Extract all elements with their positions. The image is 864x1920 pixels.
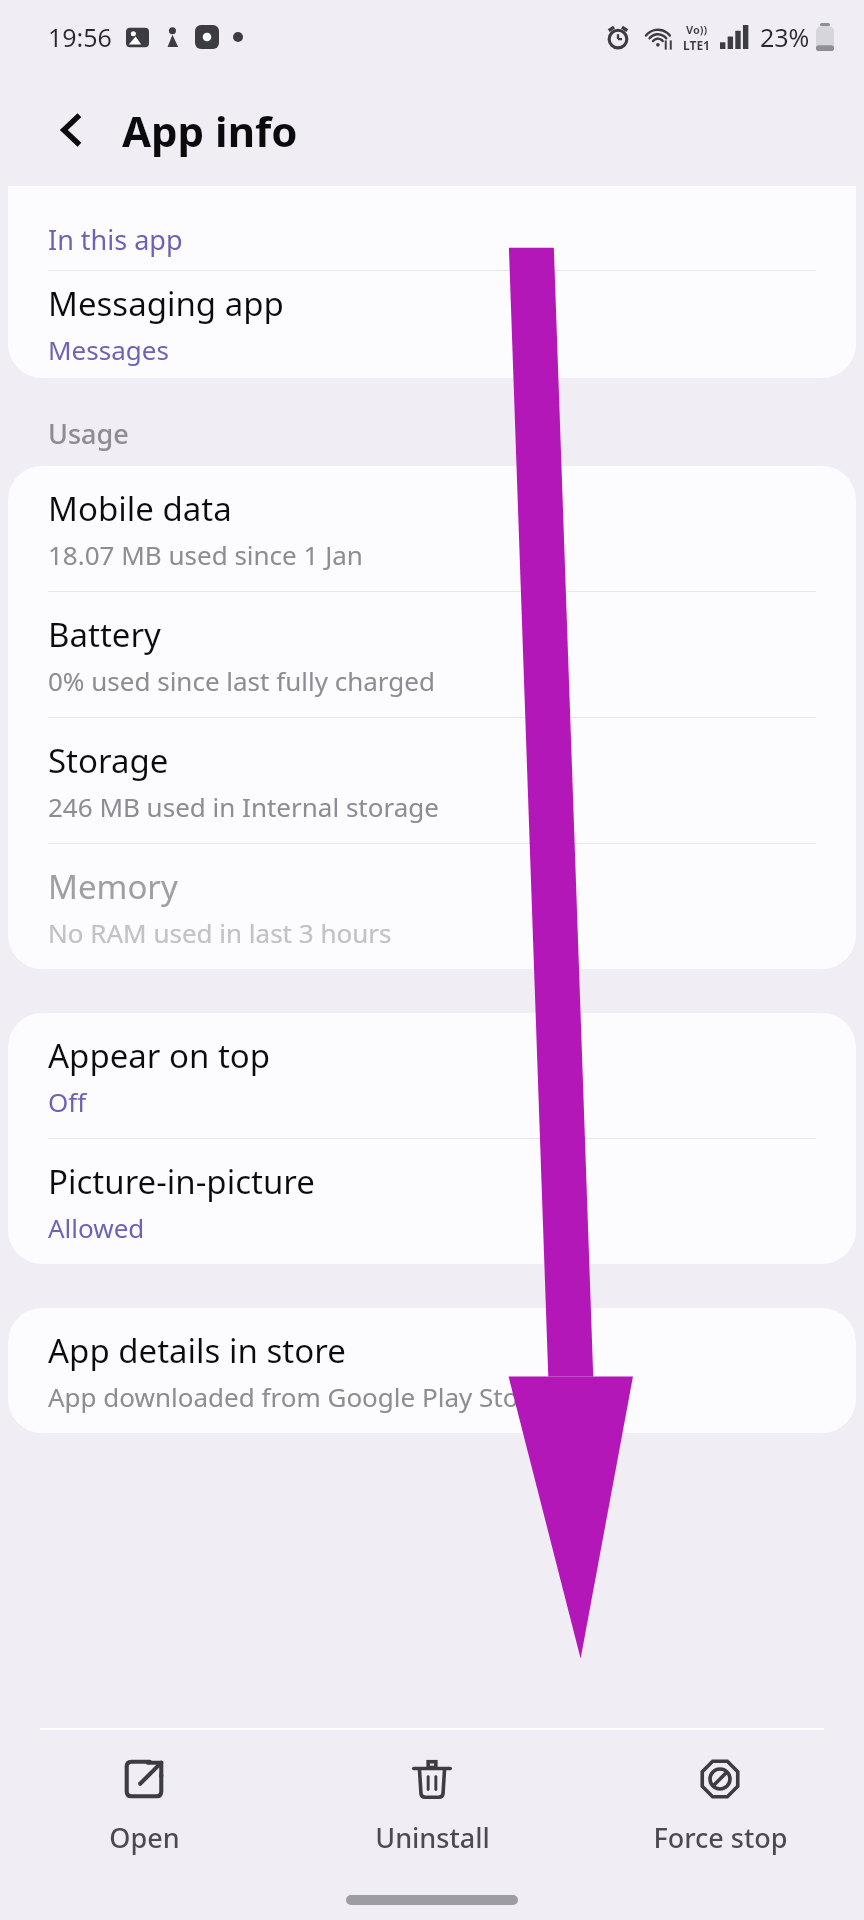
staticText: Messages xyxy=(48,332,169,367)
staticText: Battery xyxy=(48,612,161,657)
staticText: 18.07 MB used since 1 Jan xyxy=(48,537,363,572)
staticText: Allowed xyxy=(48,1210,145,1245)
button[interactable]: Battery xyxy=(8,592,856,717)
staticText: App downloaded from Google Play Store xyxy=(48,1379,544,1414)
button[interactable]: Memory xyxy=(8,844,856,969)
staticText: LTE1 xyxy=(683,37,710,53)
staticText: App info xyxy=(122,102,298,159)
staticText: Open xyxy=(109,1819,180,1856)
button[interactable]: Force stop xyxy=(576,1730,864,1880)
staticText: 19:56 xyxy=(48,20,112,54)
button[interactable]: Appear on top xyxy=(8,1013,856,1138)
button[interactable]: App details in store xyxy=(8,1308,856,1433)
staticText: Storage xyxy=(48,738,169,783)
staticText: No RAM used in last 3 hours xyxy=(48,915,392,950)
staticText: App details in store xyxy=(48,1328,346,1373)
button[interactable]: Storage xyxy=(8,718,856,843)
button[interactable]: Back xyxy=(44,102,100,158)
staticText: 246 MB used in Internal storage xyxy=(48,789,439,824)
button[interactable]: Mobile data xyxy=(8,466,856,591)
staticText: Vo)) xyxy=(686,22,708,37)
staticText: Messaging app xyxy=(48,281,284,326)
staticText: Mobile data xyxy=(48,486,232,531)
staticText: Off xyxy=(48,1084,87,1119)
button[interactable]: Open xyxy=(0,1730,288,1880)
staticText: Picture-in-picture xyxy=(48,1159,315,1204)
staticText: Usage xyxy=(48,415,129,452)
staticText: In this app xyxy=(48,221,183,258)
staticText: Uninstall xyxy=(375,1819,490,1856)
staticText: Force stop xyxy=(653,1819,788,1856)
button[interactable]: Picture-in-picture xyxy=(8,1139,856,1264)
button[interactable]: Messaging app xyxy=(8,271,856,377)
staticText: Memory xyxy=(48,864,178,909)
staticText: 0% used since last fully charged xyxy=(48,663,435,698)
staticText: 23% xyxy=(760,20,810,54)
button[interactable]: Uninstall xyxy=(288,1730,576,1880)
staticText: Appear on top xyxy=(48,1033,271,1078)
